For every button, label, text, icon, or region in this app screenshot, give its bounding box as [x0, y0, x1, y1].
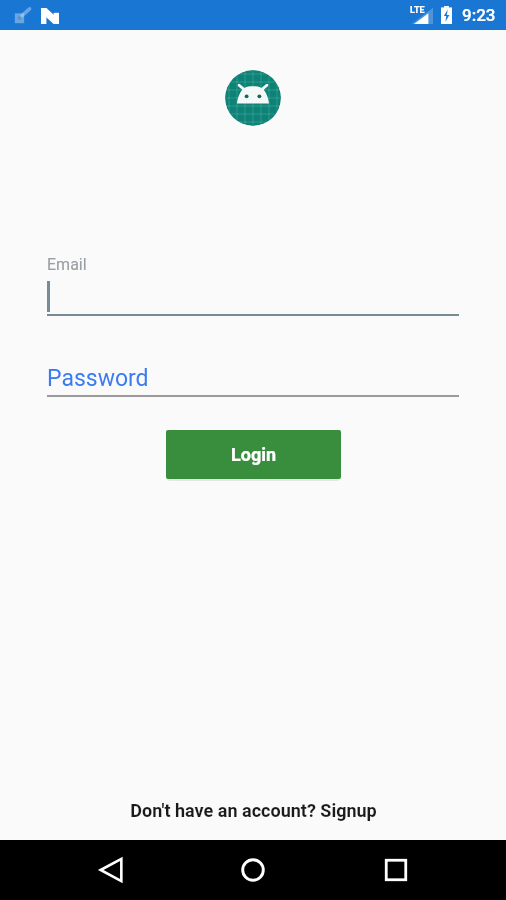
staticText: 9:23 — [462, 5, 496, 25]
staticText: Password — [47, 365, 149, 392]
staticText: Login — [231, 444, 277, 465]
button[interactable]: Home — [206, 840, 300, 900]
button[interactable]: Login — [166, 430, 341, 479]
button[interactable]: Don't have an account? Signup — [0, 800, 506, 821]
staticText: Email — [47, 255, 87, 274]
button[interactable]: Password — [47, 365, 506, 392]
staticText: Don't have an account? Signup — [130, 800, 377, 821]
button[interactable]: Back — [64, 840, 158, 900]
button[interactable]: Recent apps — [349, 840, 443, 900]
staticText: LTE — [410, 5, 425, 16]
button[interactable]: Email — [47, 255, 506, 274]
